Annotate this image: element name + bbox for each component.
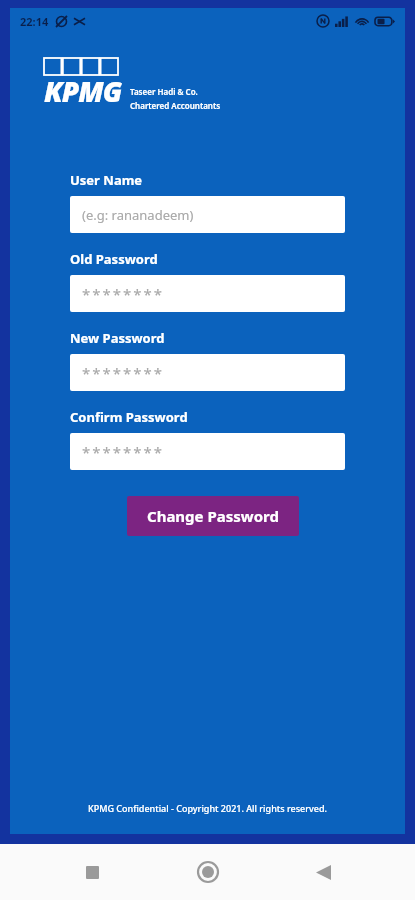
button[interactable]: Change Password bbox=[127, 496, 299, 536]
staticText: Taseer Hadi & Co. bbox=[130, 86, 198, 97]
button[interactable]: ******** bbox=[70, 354, 345, 391]
staticText: 22:14 bbox=[20, 14, 49, 29]
staticText: KPMG Confidential - Copyright 2021. All … bbox=[10, 802, 405, 814]
staticText: Confirm Password bbox=[70, 408, 188, 426]
staticText: ******** bbox=[82, 284, 165, 304]
staticText: Old Password bbox=[70, 250, 158, 268]
staticText: KPMG bbox=[44, 72, 122, 110]
button[interactable]: Recent apps bbox=[68, 848, 116, 896]
staticText: ******** bbox=[82, 363, 165, 383]
staticText: ******** bbox=[82, 442, 165, 462]
staticText: (e.g: rananadeem) bbox=[82, 206, 194, 224]
button[interactable]: ******** bbox=[70, 275, 345, 312]
button[interactable]: Home bbox=[184, 848, 232, 896]
button[interactable]: ******** bbox=[70, 433, 345, 470]
staticText: User Name bbox=[70, 171, 143, 189]
staticText: Change Password bbox=[147, 506, 279, 526]
staticText: New Password bbox=[70, 329, 165, 347]
staticText: Chartered Accountants bbox=[130, 100, 221, 111]
button[interactable]: Back bbox=[299, 848, 347, 896]
button[interactable]: (e.g: rananadeem) bbox=[70, 196, 345, 233]
